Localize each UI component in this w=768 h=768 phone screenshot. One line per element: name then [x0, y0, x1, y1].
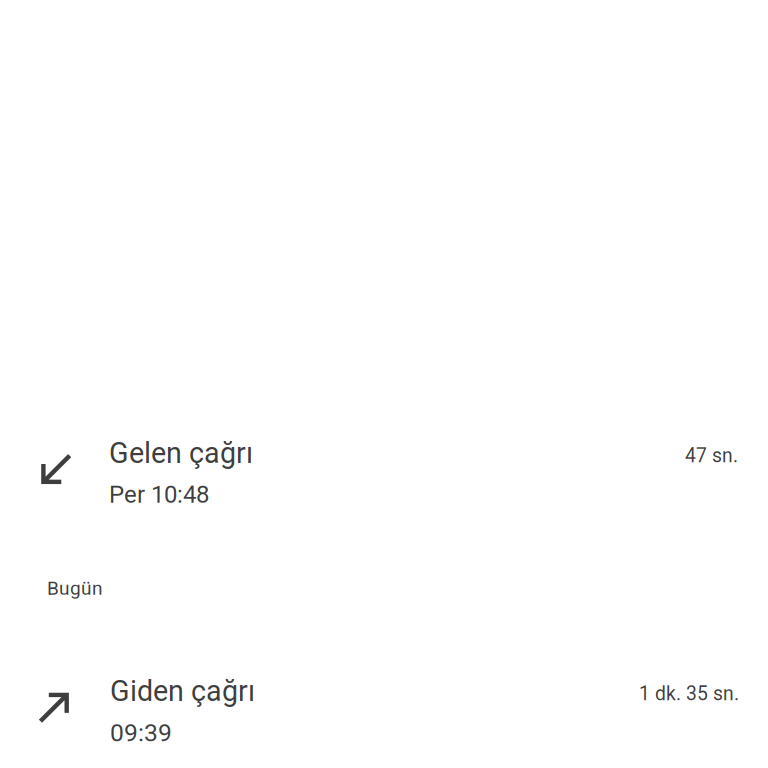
- staticText: 09:39: [110, 718, 172, 747]
- staticText: 1 dk. 35 sn.: [639, 682, 739, 705]
- button[interactable]: Giden çağrı, 09:39, 1 dk. 35 sn.: [0, 671, 768, 749]
- staticText: Per 10:48: [109, 480, 209, 508]
- staticText: Gelen çağrı: [109, 436, 253, 470]
- staticText: Giden çağrı: [110, 674, 255, 708]
- button[interactable]: Gelen çağrı, Per 10:48, 47 sn.: [0, 433, 768, 511]
- staticText: 47 sn.: [685, 444, 738, 467]
- staticText: Bugün: [47, 577, 103, 599]
